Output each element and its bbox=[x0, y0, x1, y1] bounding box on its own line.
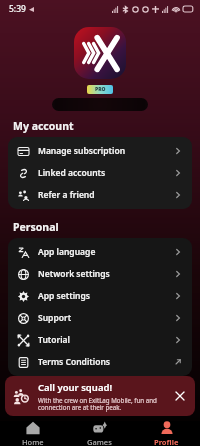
button[interactable]: Network settings bbox=[8, 263, 192, 285]
staticText: Manage subscription bbox=[38, 145, 126, 157]
staticText: App language bbox=[38, 246, 96, 258]
staticText: Personal bbox=[13, 220, 59, 234]
staticText: 5:39 bbox=[9, 3, 26, 15]
staticText: Refer a friend bbox=[38, 189, 95, 201]
button[interactable]: Profile bbox=[133, 421, 200, 446]
button[interactable]: Support bbox=[8, 307, 192, 329]
button[interactable]: App settings bbox=[8, 285, 192, 307]
staticText: PRO bbox=[95, 86, 106, 93]
button[interactable]: Close banner bbox=[173, 389, 187, 403]
button[interactable]: Tutorial bbox=[8, 329, 192, 351]
staticText: Call your squad! bbox=[38, 381, 113, 394]
staticText: Support bbox=[38, 312, 72, 324]
button[interactable]: Terms Conditions bbox=[8, 351, 192, 373]
button[interactable]: Linked accounts bbox=[8, 162, 192, 184]
staticText: My account bbox=[13, 119, 74, 133]
button[interactable]: Games bbox=[66, 421, 133, 446]
button[interactable]: App language bbox=[8, 241, 192, 263]
staticText: Profile bbox=[154, 437, 179, 446]
staticText: Games bbox=[87, 437, 112, 446]
staticText: App settings bbox=[38, 290, 90, 302]
staticText: Home bbox=[22, 437, 44, 446]
staticText: With the crew on ExitLag Mobile, fun and… bbox=[38, 396, 167, 412]
button[interactable]: Home bbox=[0, 421, 66, 446]
staticText: Tutorial bbox=[38, 334, 71, 346]
button[interactable]: Call your squad! bbox=[5, 376, 195, 416]
staticText: Network settings bbox=[38, 268, 110, 280]
button[interactable]: Manage subscription bbox=[8, 140, 192, 162]
staticText: Linked accounts bbox=[38, 167, 106, 179]
staticText: Terms Conditions bbox=[38, 356, 110, 368]
button[interactable]: Refer a friend bbox=[8, 184, 192, 206]
